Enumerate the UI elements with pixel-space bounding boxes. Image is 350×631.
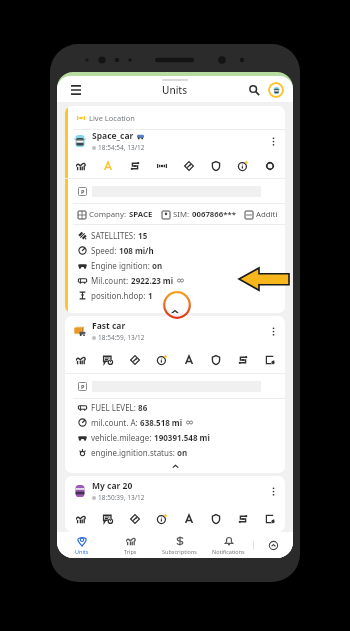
staticText: 86 <box>136 402 148 413</box>
staticText: SIM: <box>173 209 192 220</box>
staticText: Speed: <box>91 245 117 256</box>
staticText: P <box>81 188 85 195</box>
button[interactable]: Action 1 <box>73 511 88 526</box>
staticText: Additi <box>256 209 278 220</box>
staticText: Company: <box>89 209 129 220</box>
button[interactable]: Action 5 <box>181 511 196 526</box>
staticText: Units <box>75 548 89 555</box>
button[interactable]: Action 4 <box>154 511 169 526</box>
button[interactable]: Action 2 <box>100 511 115 526</box>
button[interactable]: Action 5 <box>181 158 196 173</box>
staticText: 0067866*** <box>192 209 236 220</box>
staticText: 638.518 mi <box>138 417 183 428</box>
button[interactable]: More options <box>266 324 280 338</box>
button[interactable]: Action 5 <box>181 352 196 367</box>
staticText: vehicle.mileage: <box>91 432 152 443</box>
button[interactable]: More options <box>266 134 280 148</box>
button[interactable]: Action 3 <box>127 511 142 526</box>
button[interactable]: Action 8 <box>262 511 277 526</box>
staticText: Live Location <box>89 113 135 123</box>
staticText: Subscriptions <box>162 548 197 555</box>
staticText: position.hdop: <box>91 290 146 301</box>
staticText: engine.ignition.status: <box>91 447 175 458</box>
button[interactable]: Action 3 <box>127 158 142 173</box>
button[interactable]: Expand panel <box>254 532 293 558</box>
button[interactable]: Action 7 <box>235 158 250 173</box>
staticText: Notifications <box>212 548 245 555</box>
staticText: 2922.23 mi <box>129 275 174 286</box>
button[interactable]: Action 1 <box>73 158 88 173</box>
staticText: SPACE <box>129 209 153 220</box>
button[interactable]: Action 4 <box>154 352 169 367</box>
button[interactable]: More options <box>266 484 280 498</box>
staticText: on <box>150 260 163 271</box>
button[interactable]: Trips <box>106 532 155 558</box>
button[interactable]: Action 2 <box>100 158 115 173</box>
staticText: 18:54:54, 13/12 <box>98 143 145 152</box>
staticText: 190391.548 mi <box>152 432 210 443</box>
button[interactable]: Action 6 <box>208 352 223 367</box>
staticText: Engine ignition: <box>91 260 150 271</box>
staticText: Trips <box>124 548 137 555</box>
staticText: mil.count. A: <box>91 417 138 428</box>
staticText: 18:54:59, 13/12 <box>98 333 145 342</box>
button[interactable]: Units <box>57 532 106 558</box>
button[interactable]: Menu <box>67 81 85 99</box>
staticText: Mil.count: <box>91 275 129 286</box>
staticText: FUEL LEVEL: <box>91 402 136 413</box>
button[interactable]: Search <box>245 81 263 99</box>
button[interactable]: Action 6 <box>208 511 223 526</box>
staticText: 108 mi/h <box>117 245 154 256</box>
button[interactable]: Notifications <box>204 532 253 558</box>
button[interactable]: Action 8 <box>262 352 277 367</box>
staticText: 15 <box>136 230 148 241</box>
button[interactable]: Action 6 <box>208 158 223 173</box>
staticText: P <box>81 383 85 390</box>
staticText: Space_car <box>92 130 134 142</box>
staticText: My car 20 <box>92 480 133 492</box>
staticText: SATELLITES: <box>91 230 136 241</box>
button[interactable]: Collapse <box>166 303 184 313</box>
staticText: Units <box>162 83 188 97</box>
button[interactable]: Action 3 <box>127 352 142 367</box>
button[interactable]: Subscriptions <box>155 532 204 558</box>
button[interactable]: Action 8 <box>262 158 277 173</box>
button[interactable]: Action 7 <box>235 352 250 367</box>
button[interactable]: Action 1 <box>73 352 88 367</box>
button[interactable]: Action 4 <box>154 158 169 173</box>
button[interactable]: Action 2 <box>100 352 115 367</box>
button[interactable]: Profile <box>268 82 284 98</box>
staticText: 18:50:39, 13/12 <box>98 493 145 502</box>
staticText: Fast car <box>92 320 126 332</box>
button[interactable]: Action 7 <box>235 511 250 526</box>
staticText: on <box>175 447 188 458</box>
staticText: 1 <box>146 290 153 301</box>
